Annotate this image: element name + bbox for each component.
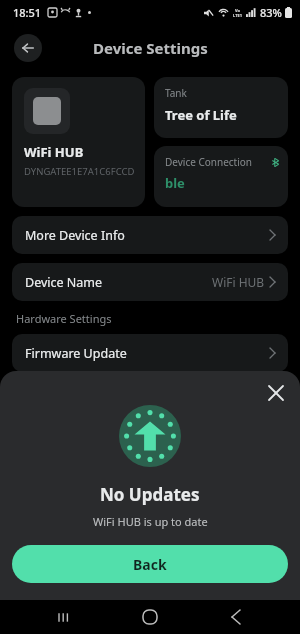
staticText: Hardware Settings	[16, 311, 112, 326]
button[interactable]: WiFi HUB	[12, 77, 145, 207]
button[interactable]: Device Name	[12, 263, 288, 301]
button[interactable]: Device Connection	[154, 146, 288, 207]
staticText: 83%	[260, 5, 282, 20]
staticText: Device Connection	[165, 155, 253, 169]
staticText: DYNGATEE1E7A1C6FCCD	[24, 165, 135, 178]
staticText: Vo	[235, 8, 241, 13]
button[interactable]: Firmware Update	[12, 334, 288, 372]
staticText: Back	[133, 555, 167, 574]
staticText: 18:51	[13, 5, 42, 20]
button[interactable]: Home	[128, 600, 172, 634]
staticText: Device Name	[25, 274, 103, 291]
button[interactable]: More Device Info	[12, 216, 288, 254]
staticText: More Device Info	[25, 227, 125, 244]
staticText: No Updates	[100, 483, 200, 506]
button[interactable]: Back	[214, 600, 258, 634]
button[interactable]: Recents	[42, 600, 86, 634]
staticText: LTE1	[233, 13, 242, 18]
staticText: WiFi HUB is up to date	[93, 514, 208, 529]
staticText: ble	[165, 174, 185, 192]
staticText: Tree of Life	[165, 106, 237, 124]
staticText: WiFi HUB	[24, 143, 84, 161]
button[interactable]: Close	[260, 377, 292, 409]
button[interactable]: Back	[14, 34, 42, 62]
staticText: Tank	[165, 86, 187, 100]
staticText: Firmware Update	[25, 345, 127, 362]
button[interactable]: Back	[12, 545, 288, 583]
staticText: WiFi HUB	[212, 274, 265, 290]
staticText: Device Settings	[93, 38, 208, 58]
button[interactable]: Tank	[154, 77, 288, 138]
